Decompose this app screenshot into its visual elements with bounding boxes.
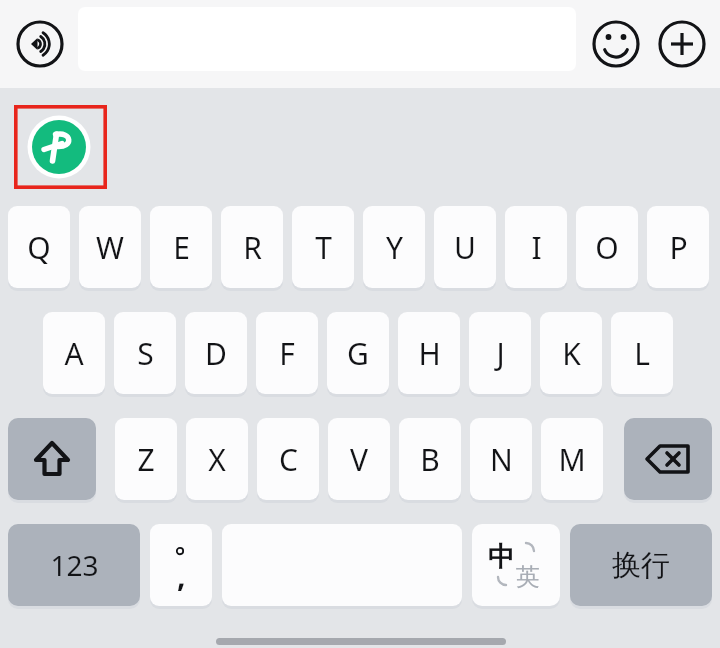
- button[interactable]: B: [399, 418, 461, 500]
- staticText: 英: [516, 562, 540, 592]
- staticText: S: [137, 333, 154, 374]
- staticText: Z: [137, 439, 155, 480]
- button[interactable]: X: [186, 418, 248, 500]
- button[interactable]: N: [470, 418, 532, 500]
- button[interactable]: Backspace: [624, 418, 712, 500]
- staticText: 换行: [612, 547, 670, 584]
- staticText: V: [350, 439, 368, 480]
- staticText: J: [496, 333, 505, 374]
- button[interactable]: 换行: [570, 524, 712, 606]
- staticText: Q: [27, 227, 51, 268]
- staticText: D: [205, 333, 227, 374]
- button[interactable]: K: [540, 312, 602, 394]
- staticText: I: [531, 227, 542, 268]
- button[interactable]: S: [114, 312, 176, 394]
- button[interactable]: Punctuation: [150, 524, 212, 606]
- button[interactable]: 123: [8, 524, 140, 606]
- button[interactable]: P: [647, 206, 709, 288]
- staticText: L: [634, 333, 650, 374]
- button[interactable]: W: [79, 206, 141, 288]
- button[interactable]: O: [576, 206, 638, 288]
- button[interactable]: Y: [363, 206, 425, 288]
- button[interactable]: Q: [8, 206, 70, 288]
- staticText: X: [208, 439, 226, 480]
- button[interactable]: D: [185, 312, 247, 394]
- staticText: E: [173, 227, 190, 268]
- staticText: H: [418, 333, 441, 374]
- staticText: O: [595, 227, 619, 268]
- button[interactable]: H: [398, 312, 460, 394]
- staticText: K: [562, 333, 581, 374]
- button[interactable]: E: [150, 206, 212, 288]
- button[interactable]: Z: [115, 418, 177, 500]
- staticText: W: [96, 227, 124, 268]
- button[interactable]: G: [327, 312, 389, 394]
- button[interactable]: A: [43, 312, 105, 394]
- staticText: ,: [177, 555, 186, 596]
- staticText: 中: [488, 540, 515, 574]
- staticText: B: [420, 439, 440, 480]
- button[interactable]: I: [505, 206, 567, 288]
- staticText: A: [64, 333, 84, 374]
- button[interactable]: V: [328, 418, 390, 500]
- staticText: R: [243, 227, 262, 268]
- staticText: U: [454, 227, 476, 268]
- button[interactable]: U: [434, 206, 496, 288]
- button[interactable]: Emoji: [590, 13, 642, 75]
- button[interactable]: Switch Chinese English: [472, 524, 560, 606]
- button[interactable]: T: [292, 206, 354, 288]
- staticText: T: [315, 227, 332, 268]
- staticText: G: [347, 333, 369, 374]
- staticText: Y: [386, 227, 403, 268]
- button[interactable]: L: [611, 312, 673, 394]
- button[interactable]: Voice input: [14, 13, 66, 75]
- staticText: P: [669, 227, 688, 268]
- staticText: F: [279, 333, 295, 374]
- staticText: 123: [50, 546, 99, 584]
- staticText: M: [558, 439, 586, 480]
- button[interactable]: M: [541, 418, 603, 500]
- staticText: N: [490, 439, 513, 480]
- button[interactable]: Shift: [8, 418, 96, 500]
- button[interactable]: Add: [656, 13, 708, 75]
- button[interactable]: C: [257, 418, 319, 500]
- button[interactable]: Pinyin app shortcut: [14, 105, 107, 189]
- button[interactable]: R: [221, 206, 283, 288]
- button[interactable]: F: [256, 312, 318, 394]
- staticText: C: [279, 439, 298, 480]
- button[interactable]: J: [469, 312, 531, 394]
